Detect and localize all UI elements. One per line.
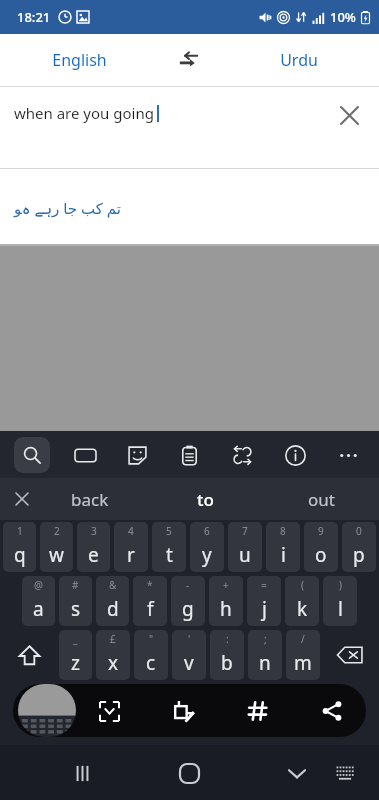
button[interactable]: 9	[304, 522, 338, 572]
staticText: l	[338, 596, 343, 622]
button[interactable]: ;	[248, 630, 282, 680]
button[interactable]: _	[59, 630, 92, 680]
button[interactable]: :	[210, 630, 244, 680]
staticText: 10%	[330, 8, 356, 26]
staticText: 7	[242, 524, 248, 538]
staticText: )	[339, 578, 342, 592]
staticText: English	[52, 49, 107, 71]
button[interactable]: Scan text	[89, 691, 129, 731]
button[interactable]: Screenshot preview	[18, 684, 76, 737]
staticText: 4	[128, 524, 134, 538]
staticText: g	[182, 596, 194, 622]
button[interactable]: "	[134, 630, 168, 680]
staticText: #	[72, 578, 79, 592]
staticText: m	[294, 650, 312, 676]
staticText: b	[221, 650, 233, 676]
button[interactable]: Share	[312, 691, 352, 731]
button[interactable]: تم کب جا رہے ہو	[0, 169, 379, 244]
button[interactable]: Swap languages	[159, 34, 219, 86]
staticText: n	[259, 650, 271, 676]
staticText: =	[261, 578, 267, 592]
button[interactable]: back	[32, 478, 147, 520]
staticText: 6	[204, 524, 210, 538]
button[interactable]: when are you going	[0, 87, 379, 168]
staticText: a	[33, 596, 44, 622]
staticText: t	[166, 542, 173, 568]
staticText: +	[223, 578, 229, 592]
staticText: back	[71, 488, 109, 511]
staticText: p	[353, 542, 365, 568]
button[interactable]: English	[0, 34, 159, 86]
button[interactable]: 3	[77, 522, 110, 572]
button[interactable]: 2	[40, 522, 73, 572]
staticText: q	[14, 542, 26, 568]
button[interactable]: /	[286, 630, 320, 680]
staticText: 5	[166, 524, 172, 538]
button[interactable]: Tags	[238, 691, 278, 731]
staticText: j	[262, 596, 267, 622]
staticText: y	[202, 542, 212, 568]
button[interactable]: Home	[165, 749, 213, 797]
staticText: &	[109, 578, 117, 592]
staticText: Urdu	[280, 49, 318, 71]
button[interactable]: 0	[342, 522, 376, 572]
button[interactable]: to	[147, 478, 263, 520]
button[interactable]: Hide keyboard	[273, 749, 321, 797]
button[interactable]: +	[209, 576, 243, 626]
button[interactable]: #	[59, 576, 92, 626]
button[interactable]: Recents	[58, 749, 106, 797]
staticText: e	[88, 542, 99, 568]
button[interactable]: 5	[152, 522, 186, 572]
staticText: 18:21	[17, 8, 51, 26]
staticText: d	[107, 596, 119, 622]
button[interactable]: Info	[278, 438, 312, 472]
button[interactable]: (	[285, 576, 319, 626]
staticText: s	[71, 596, 81, 622]
button[interactable]: '	[172, 630, 206, 680]
staticText: 0	[356, 524, 362, 538]
staticText: k	[297, 596, 308, 622]
button[interactable]: out	[263, 478, 379, 520]
staticText: _	[73, 632, 78, 646]
button[interactable]: 6	[190, 522, 224, 572]
button[interactable]: *	[133, 576, 167, 626]
staticText: c	[146, 650, 156, 676]
staticText: w	[49, 542, 64, 568]
button[interactable]: More options	[331, 438, 365, 472]
button[interactable]: -	[171, 576, 205, 626]
staticText: تم کب جا رہے ہو	[14, 198, 121, 218]
staticText: i	[281, 542, 286, 568]
button[interactable]: Crop and edit	[164, 691, 204, 731]
staticText: 1	[17, 524, 23, 538]
button[interactable]: 1	[3, 522, 36, 572]
staticText: out	[308, 488, 335, 511]
button[interactable]: =	[247, 576, 281, 626]
staticText: r	[127, 542, 135, 568]
button[interactable]: 8	[266, 522, 300, 572]
button[interactable]: Stickers	[120, 438, 154, 472]
staticText: :	[226, 632, 229, 646]
button[interactable]: Close suggestions	[9, 486, 35, 512]
button[interactable]: Backspace	[322, 628, 378, 682]
button[interactable]: 4	[114, 522, 148, 572]
button[interactable]: Clear text	[333, 99, 365, 131]
staticText: ;	[264, 632, 267, 646]
staticText: £	[110, 632, 116, 646]
button[interactable]: Clipboard	[172, 438, 206, 472]
staticText: /	[301, 632, 305, 646]
button[interactable]: Shift	[1, 628, 57, 682]
button[interactable]: Translate	[225, 438, 259, 472]
button[interactable]: £	[96, 630, 130, 680]
staticText: x	[108, 650, 119, 676]
button[interactable]: 7	[228, 522, 262, 572]
button[interactable]: )	[323, 576, 357, 626]
button[interactable]: GIF	[68, 438, 102, 472]
button[interactable]: Search	[14, 437, 50, 473]
staticText: (	[301, 578, 304, 592]
staticText: -	[186, 578, 190, 592]
button[interactable]: @	[22, 576, 55, 626]
button[interactable]: &	[96, 576, 129, 626]
button[interactable]: Keyboard layout	[321, 749, 369, 797]
staticText: f	[147, 596, 154, 622]
button[interactable]: Urdu	[219, 34, 379, 86]
